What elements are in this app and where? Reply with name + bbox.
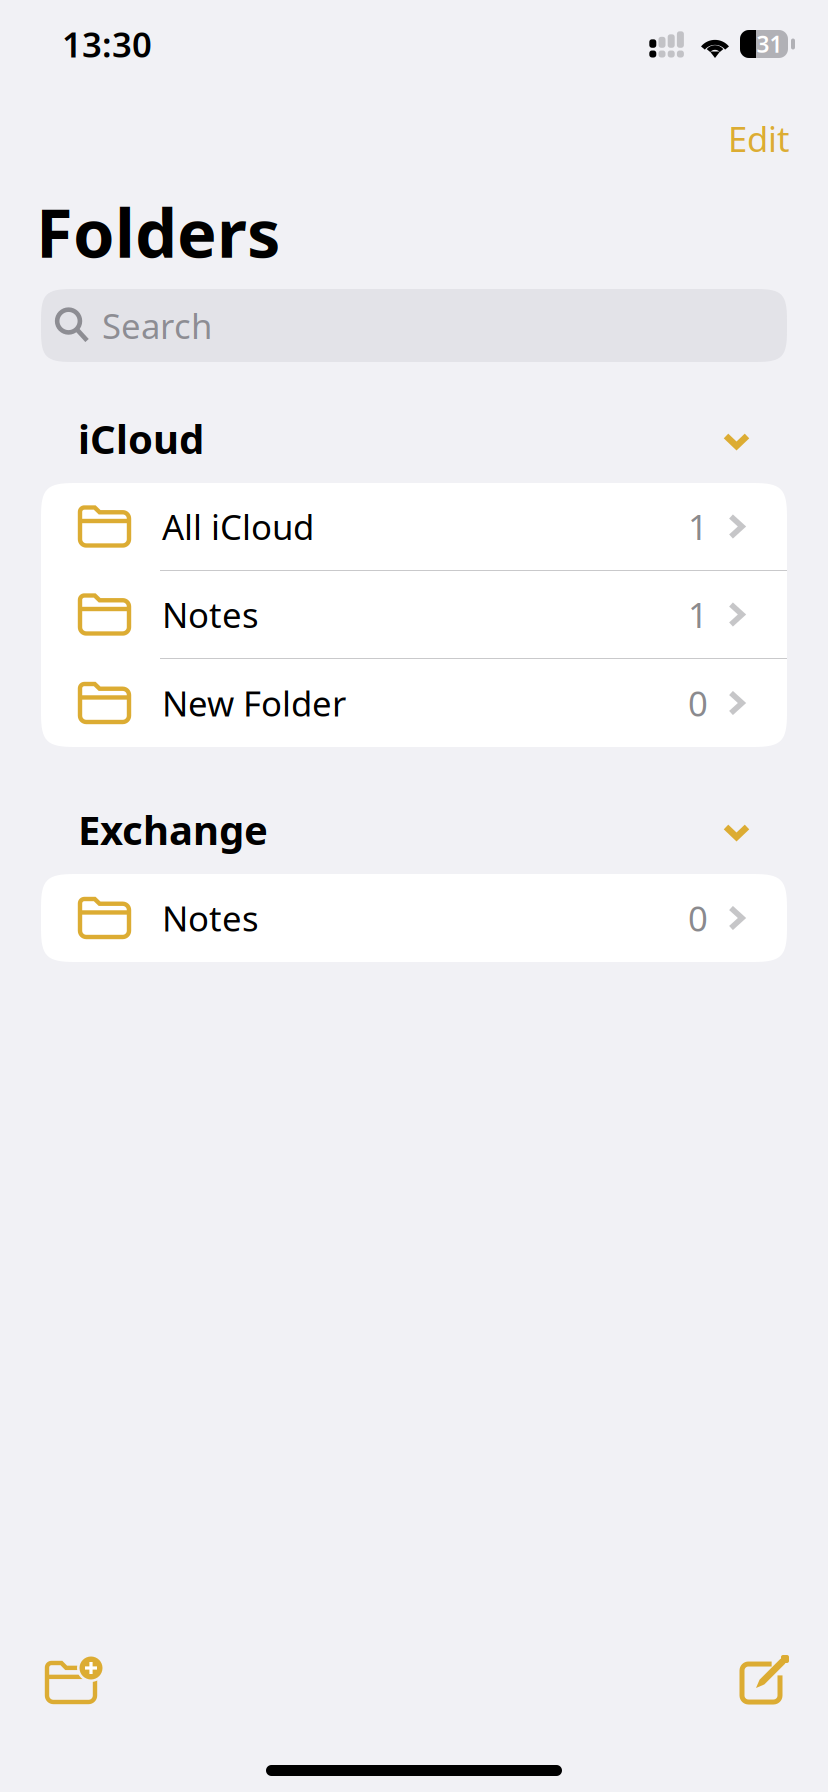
staticText: iCloud (78, 412, 204, 465)
button[interactable]: New Note (736, 1648, 796, 1708)
staticText: Notes (162, 895, 259, 941)
button[interactable]: New Folder (41, 1646, 111, 1710)
staticText: Notes (162, 591, 259, 637)
staticText: All iCloud (162, 503, 314, 549)
staticText: 1 (688, 591, 708, 637)
staticText: 0 (688, 895, 708, 941)
staticText: Edit (728, 115, 790, 161)
button[interactable]: Edit (710, 93, 808, 173)
staticText: Folders (36, 188, 280, 276)
staticText: 13:30 (62, 21, 152, 67)
staticText: Exchange (78, 803, 268, 856)
button[interactable]: Collapse iCloud (704, 412, 769, 455)
staticText: 31 (756, 29, 782, 59)
button[interactable]: Notes (41, 571, 787, 659)
button[interactable]: Notes (41, 874, 787, 962)
staticText: 0 (688, 680, 708, 726)
button[interactable]: Collapse Exchange (704, 803, 769, 846)
staticText: New Folder (162, 680, 346, 726)
staticText: Search (102, 302, 212, 348)
button[interactable]: All iCloud (41, 483, 787, 571)
button[interactable]: New Folder (41, 659, 787, 747)
staticText: 1 (688, 503, 708, 549)
